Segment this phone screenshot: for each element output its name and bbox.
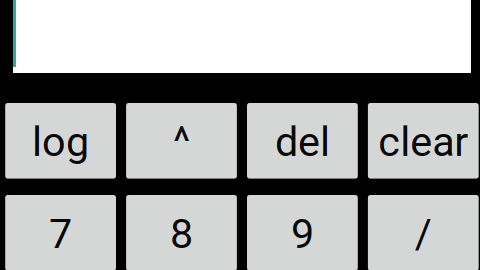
button[interactable]: log [5, 103, 116, 179]
button[interactable]: / [368, 195, 479, 270]
button[interactable]: 9 [247, 195, 358, 270]
button[interactable]: 8 [126, 195, 237, 270]
staticText: 9 [291, 210, 314, 258]
staticText: 8 [170, 210, 193, 258]
staticText: log [32, 118, 89, 166]
button[interactable]: ^ [126, 103, 237, 179]
button[interactable]: clear [368, 103, 479, 179]
button[interactable]: del [247, 103, 358, 179]
staticText: clear [378, 118, 468, 166]
staticText: / [415, 210, 432, 258]
staticText: del [275, 118, 330, 166]
button[interactable]: 7 [5, 195, 116, 270]
staticText: ^ [173, 118, 190, 166]
staticText: 7 [49, 210, 72, 258]
